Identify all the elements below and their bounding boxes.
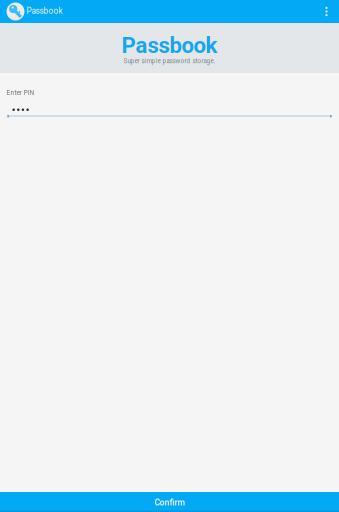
button[interactable]: More options [316,0,336,23]
staticText: Enter PIN [6,89,34,96]
staticText: Passbook [121,32,217,58]
staticText: Confirm [154,498,184,508]
staticText: Super simple password storage. [123,57,215,65]
button[interactable]: Confirm [0,492,339,512]
staticText: Passbook [26,6,62,16]
